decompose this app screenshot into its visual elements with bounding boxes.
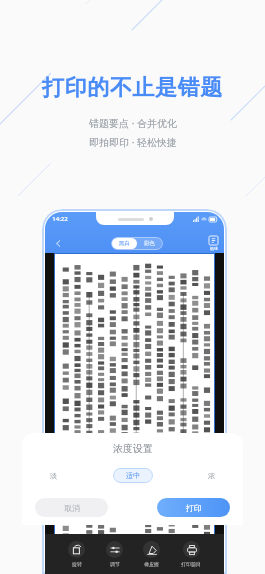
staticText: 14:22 (52, 215, 68, 223)
button[interactable]: 彩色 (137, 238, 162, 249)
button[interactable]: 取消 (35, 498, 108, 517)
staticText: 彩色 (144, 240, 155, 247)
staticText: 即拍即印 · 轻松快捷 (89, 135, 177, 149)
staticText: 取消 (64, 503, 80, 513)
button[interactable]: 淡 (46, 467, 61, 484)
staticText: 浓度设置 (113, 442, 153, 455)
button[interactable]: 橡皮擦 (140, 540, 163, 568)
staticText: 旋转 (72, 561, 82, 567)
button[interactable]: Back (51, 236, 65, 250)
staticText: 打印题目 (181, 561, 201, 567)
button[interactable]: 打印题目 (178, 540, 204, 568)
button[interactable]: 黑白 (112, 238, 137, 249)
button[interactable]: 旋转 (65, 540, 88, 568)
staticText: 橡皮擦 (144, 561, 159, 567)
button[interactable]: 浓 (204, 467, 219, 484)
staticText: 错题要点 · 合并优化 (89, 116, 177, 130)
staticText: 打印 (186, 503, 202, 513)
button[interactable]: 打印 (157, 498, 230, 517)
staticText: 适中 (126, 471, 140, 480)
staticText: 调节 (110, 561, 120, 567)
button[interactable]: 适中 (113, 468, 153, 483)
button[interactable]: 调节 (103, 540, 126, 568)
staticText: 黑白 (119, 240, 130, 247)
staticText: 纸张 (210, 246, 218, 251)
button[interactable]: Paper size (209, 236, 218, 251)
staticText: 打印的不止是错题 (42, 74, 223, 102)
